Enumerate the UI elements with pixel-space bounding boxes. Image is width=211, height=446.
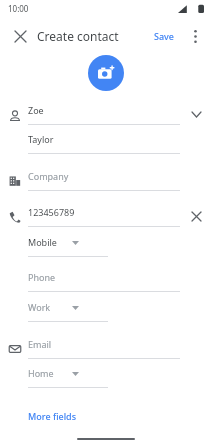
button[interactable]: 123456789 <box>28 205 180 227</box>
button[interactable]: More options <box>181 22 209 50</box>
staticText: Company <box>28 170 69 182</box>
staticText: Email <box>28 338 52 350</box>
button[interactable]: Close <box>4 20 36 52</box>
staticText: Save <box>154 30 175 42</box>
button[interactable]: Save <box>148 26 181 46</box>
staticText: Phone <box>28 271 56 283</box>
button[interactable]: More fields <box>23 406 82 426</box>
button[interactable]: Add photo <box>88 55 124 91</box>
button[interactable]: Email <box>28 337 180 359</box>
staticText: Work <box>28 301 51 313</box>
button[interactable]: Home <box>28 366 108 388</box>
button[interactable]: Company <box>28 169 180 191</box>
staticText: More fields <box>28 410 77 422</box>
button[interactable]: Zoe <box>28 103 180 125</box>
staticText: Zoe <box>28 104 44 116</box>
button[interactable]: Clear phone number <box>186 206 206 226</box>
staticText: 10:00 <box>8 3 29 14</box>
staticText: 123456789 <box>28 206 75 218</box>
button[interactable]: Phone <box>28 270 180 292</box>
staticText: Taylor <box>28 133 54 145</box>
button[interactable]: Mobile <box>28 235 108 257</box>
staticText: Create contact <box>37 28 119 44</box>
button[interactable]: Work <box>28 300 108 322</box>
button[interactable]: Expand name fields <box>186 104 206 124</box>
staticText: Mobile <box>28 236 57 248</box>
button[interactable]: Taylor <box>28 132 180 154</box>
staticText: Home <box>28 367 54 379</box>
